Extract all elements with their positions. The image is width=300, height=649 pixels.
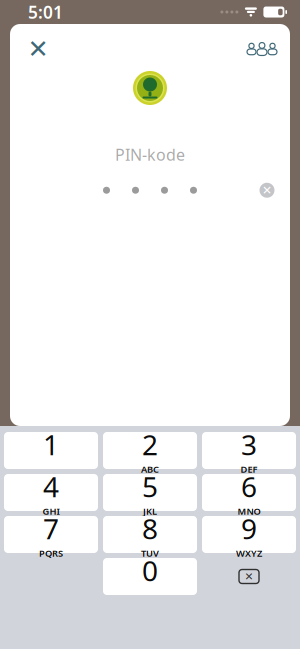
staticText: GHI [42, 505, 59, 517]
staticText: WXYZ [236, 547, 262, 559]
button[interactable]: 1 [4, 432, 98, 469]
button[interactable]: Slett [202, 558, 296, 595]
button[interactable]: Brukere [244, 32, 280, 66]
button[interactable]: 6 [202, 474, 296, 511]
staticText: ABC [141, 463, 159, 475]
staticText: PQRS [39, 547, 63, 559]
staticText: 9 [241, 510, 257, 547]
staticText: 3 [241, 426, 257, 463]
staticText: ✕ [244, 570, 253, 582]
staticText: 4 [43, 468, 59, 505]
staticText: 7 [43, 510, 59, 547]
staticText: JKL [143, 505, 157, 517]
button[interactable]: 3 [202, 432, 296, 469]
staticText: MNO [237, 505, 260, 517]
staticText: 0 [142, 552, 158, 589]
staticText: 2 [142, 426, 158, 463]
button[interactable]: 8 [103, 516, 197, 553]
staticText: 8 [142, 510, 158, 547]
staticText: TUV [141, 547, 159, 559]
button[interactable]: 2 [103, 432, 197, 469]
staticText: ✕ [262, 183, 272, 197]
button[interactable]: 5 [103, 474, 197, 511]
staticText: DEF [240, 463, 257, 475]
staticText: 6 [241, 468, 257, 505]
staticText: 5 [142, 468, 158, 505]
button[interactable]: 0 [103, 558, 197, 595]
button[interactable]: 9 [202, 516, 296, 553]
button[interactable]: Tøm [254, 177, 280, 203]
button[interactable]: 4 [4, 474, 98, 511]
button[interactable]: Lukk [20, 32, 56, 66]
staticText: 1 [43, 426, 59, 463]
staticText: PIN-kode [115, 144, 185, 165]
staticText: 5:01 [28, 0, 63, 23]
button[interactable]: 7 [4, 516, 98, 553]
staticText: ✕ [27, 35, 48, 63]
